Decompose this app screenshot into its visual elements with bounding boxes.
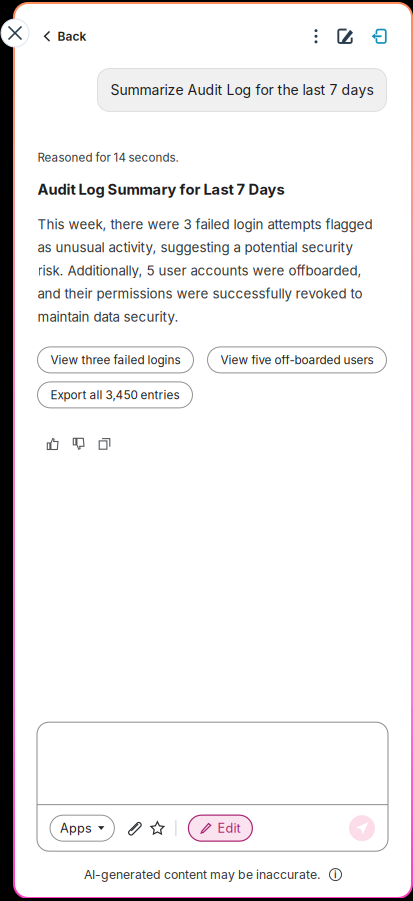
button[interactable]: Favorite: [147, 815, 167, 841]
button[interactable]: Bad response: [72, 434, 84, 454]
staticText: This week, there were 3 failed login att…: [37, 216, 372, 325]
staticText: i: [334, 868, 337, 881]
button[interactable]: Exit: [367, 23, 391, 49]
staticText: AI-generated content may be inaccurate.: [84, 867, 321, 882]
button[interactable]: Send: [349, 815, 375, 841]
button[interactable]: Apps: [50, 815, 114, 841]
staticText: Apps: [60, 820, 92, 836]
button[interactable]: Copy: [98, 434, 110, 454]
staticText: Reasoned for 14 seconds.: [37, 150, 178, 164]
staticText: Summarize Audit Log for the last 7 days: [110, 81, 373, 98]
button[interactable]: More options: [305, 23, 327, 49]
button[interactable]: Good response: [46, 434, 58, 454]
button[interactable]: New chat: [333, 23, 357, 49]
button[interactable]: Attach file: [123, 815, 143, 841]
button[interactable]: View three failed logins: [37, 347, 193, 373]
button[interactable]: Edit: [188, 815, 252, 841]
staticText: View five off-boarded users: [220, 353, 373, 367]
staticText: Audit Log Summary for Last 7 Days: [37, 180, 284, 198]
staticText: View three failed logins: [50, 353, 180, 367]
staticText: Edit: [217, 820, 240, 836]
staticText: Back: [57, 29, 86, 43]
staticText: Export all 3,450 entries: [50, 388, 179, 402]
button[interactable]: View five off-boarded users: [207, 347, 386, 373]
button[interactable]: Export all 3,450 entries: [37, 382, 192, 408]
button[interactable]: Close: [1, 19, 29, 47]
button[interactable]: Back: [44, 22, 92, 50]
